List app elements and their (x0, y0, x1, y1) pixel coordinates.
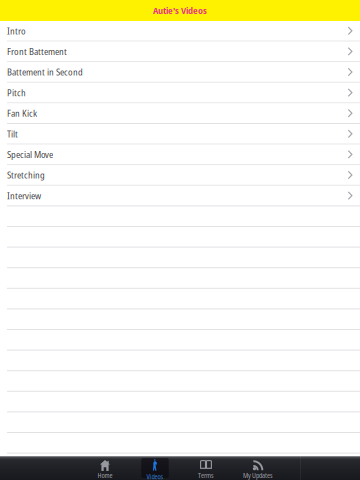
staticText: Home (97, 471, 112, 480)
button[interactable]: Special Move (0, 145, 360, 165)
staticText: Terms (198, 471, 214, 480)
staticText: Intro (7, 24, 26, 37)
staticText: Autie's Videos (153, 4, 207, 17)
staticText: Interview (7, 189, 41, 202)
staticText: Front Battement (7, 45, 67, 58)
staticText: Stretching (7, 169, 45, 181)
button[interactable]: My Updates (241, 456, 275, 480)
button[interactable]: Battement in Second (0, 62, 360, 83)
staticText: Videos (146, 472, 163, 480)
staticText: Battement in Second (7, 66, 83, 78)
button[interactable]: Home (88, 456, 122, 480)
button[interactable]: Stretching (0, 165, 360, 186)
staticText: Tilt (7, 127, 18, 140)
staticText: My Updates (243, 471, 273, 480)
staticText: Special Move (7, 148, 53, 161)
button[interactable]: Terms (189, 456, 223, 480)
staticText: Fan Kick (7, 107, 37, 119)
button[interactable]: Interview (0, 186, 360, 206)
button[interactable]: Videos (138, 456, 172, 480)
button[interactable]: Intro (0, 21, 360, 42)
button[interactable]: Pitch (0, 83, 360, 103)
staticText: Pitch (7, 86, 26, 99)
button[interactable]: Front Battement (0, 42, 360, 62)
button[interactable]: Fan Kick (0, 103, 360, 124)
button[interactable]: Tilt (0, 124, 360, 145)
